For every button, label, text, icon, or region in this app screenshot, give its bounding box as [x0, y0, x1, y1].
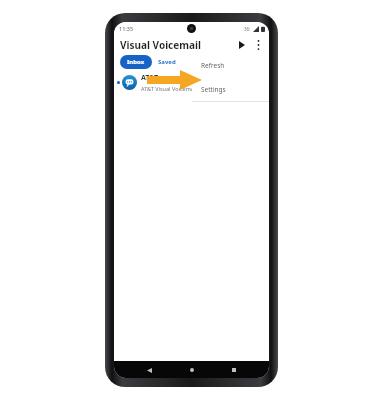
staticText: 36:: [244, 26, 251, 32]
button[interactable]: Recent apps: [226, 362, 242, 378]
staticText: Visual Voicemail: [120, 38, 201, 52]
staticText: Settings: [201, 85, 226, 94]
staticText: Saved: [158, 58, 176, 66]
button[interactable]: Home: [184, 362, 200, 378]
staticText: AT&T: [141, 73, 159, 83]
staticText: Refresh: [201, 61, 225, 70]
button[interactable]: Inbox: [120, 55, 152, 69]
button[interactable]: Refresh: [192, 54, 269, 77]
button[interactable]: AT&T: [114, 70, 269, 95]
button[interactable]: Play all: [234, 37, 250, 53]
button[interactable]: More options: [250, 37, 266, 53]
button[interactable]: Saved: [152, 55, 182, 69]
button[interactable]: Back: [141, 362, 157, 378]
staticText: 11:35: [119, 25, 134, 32]
button[interactable]: Settings: [192, 77, 269, 101]
staticText: Inbox: [127, 58, 145, 66]
staticText: AT&T Visual Voicemail provides a messa…: [141, 85, 248, 92]
